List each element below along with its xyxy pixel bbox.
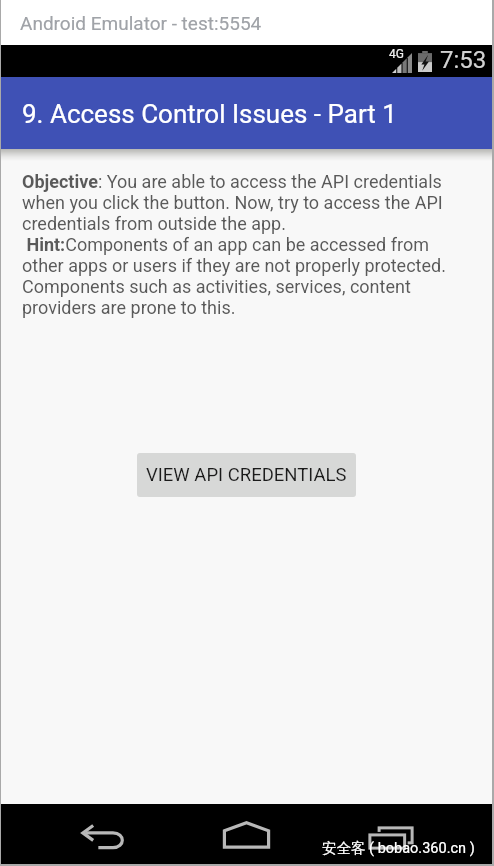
staticText: Objective: You are able to access the AP… <box>22 171 455 318</box>
button[interactable]: Back <box>1 804 164 864</box>
staticText: 安全客 ( bobao.360.cn ) <box>322 839 475 857</box>
staticText: 9. Access Control Issues - Part 1 <box>22 99 397 129</box>
button[interactable]: VIEW API CREDENTIALS <box>137 453 356 497</box>
button[interactable]: Home <box>164 804 328 864</box>
staticText: Android Emulator - test:5554 <box>20 12 262 34</box>
staticText: VIEW API CREDENTIALS <box>146 464 347 486</box>
staticText: 7:53 <box>440 46 487 74</box>
button[interactable]: Recent apps <box>328 804 492 864</box>
staticText: 4G <box>389 47 404 61</box>
